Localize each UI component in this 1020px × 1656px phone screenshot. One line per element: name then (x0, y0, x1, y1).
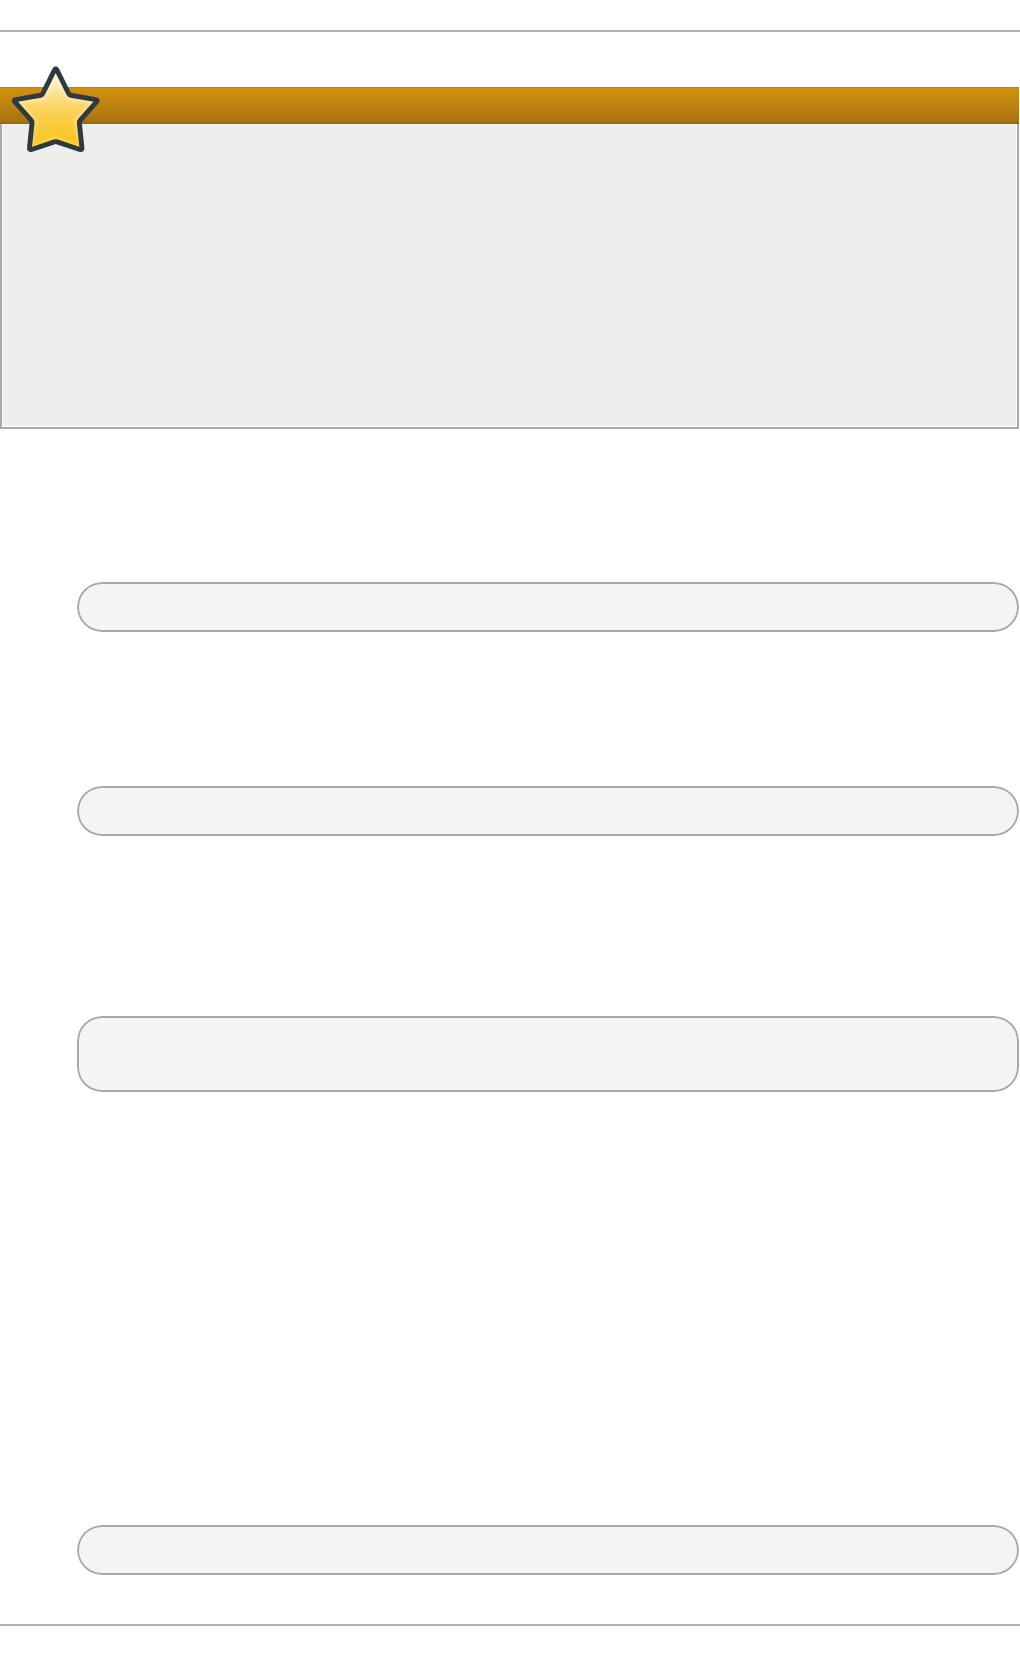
button[interactable] (77, 1016, 1019, 1092)
button[interactable] (77, 786, 1019, 836)
button[interactable]: Favourite (8, 62, 104, 158)
button[interactable] (77, 1525, 1019, 1575)
button[interactable] (77, 582, 1019, 632)
